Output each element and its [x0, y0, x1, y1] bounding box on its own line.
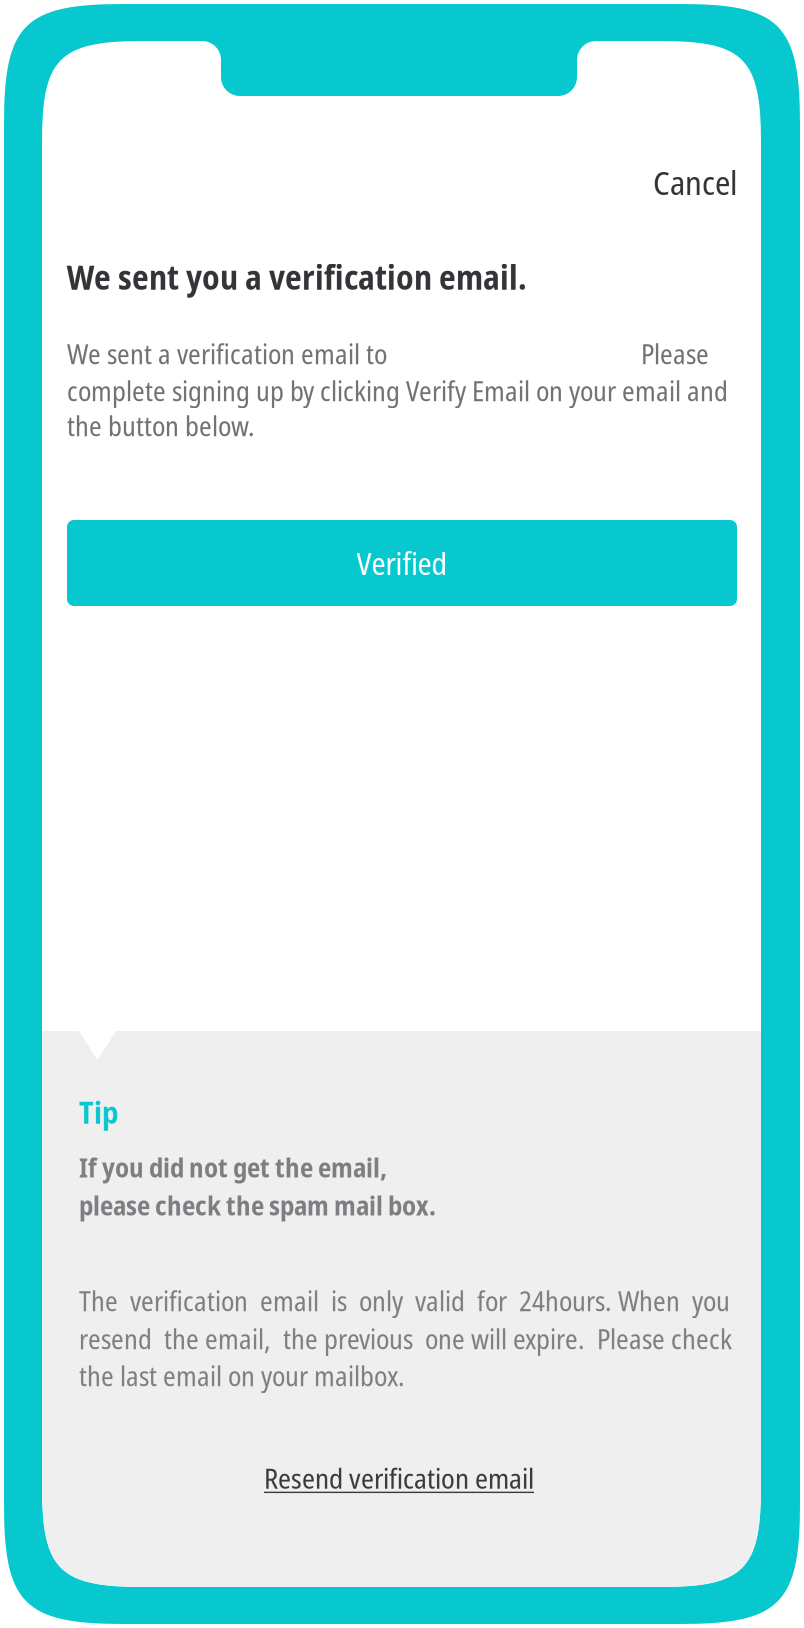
button[interactable]: Resend verification email	[254, 1454, 544, 1502]
staticText: If you did not get the email,	[79, 1149, 387, 1185]
staticText: We sent you a verification email.	[67, 254, 527, 299]
button[interactable]: Verified	[67, 520, 737, 606]
button[interactable]: Cancel	[607, 157, 737, 207]
staticText: We sent a verification email to	[67, 335, 387, 372]
staticText: resend the email, the previous one will …	[79, 1320, 732, 1357]
staticText: Please	[641, 335, 709, 372]
staticText: Cancel	[653, 159, 737, 205]
staticText: please check the spam mail box.	[79, 1187, 436, 1223]
staticText: Resend verification email	[264, 1459, 534, 1497]
staticText: the last email on your mailbox.	[79, 1357, 405, 1394]
staticText: complete signing up by clicking Verify E…	[67, 372, 728, 409]
staticText: The verification email is only valid for…	[79, 1282, 730, 1319]
staticText: the button below.	[67, 407, 255, 444]
staticText: Verified	[356, 542, 447, 584]
staticText: Tip	[79, 1091, 119, 1133]
